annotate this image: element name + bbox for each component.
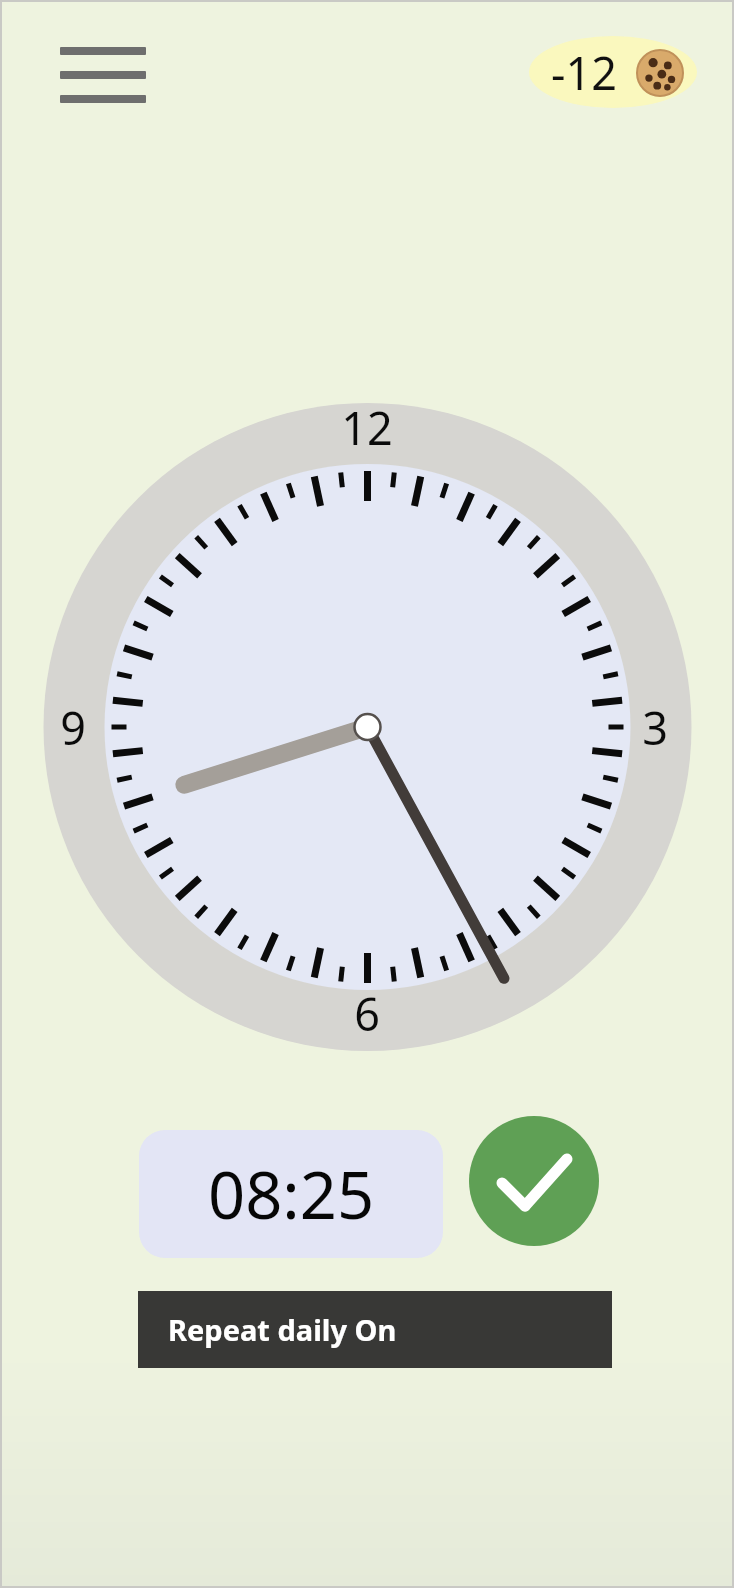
button[interactable]: Repeat daily On	[138, 1291, 612, 1368]
button[interactable]: 08:25	[139, 1130, 443, 1258]
button[interactable]: Confirm alarm	[469, 1116, 599, 1246]
staticText: 08:25	[208, 1150, 375, 1239]
staticText: 9	[60, 697, 86, 758]
staticText: 12	[341, 397, 393, 458]
staticText: Repeat daily On	[168, 1310, 397, 1349]
staticText: 3	[642, 697, 668, 758]
button[interactable]: Menu	[46, 30, 162, 120]
staticText: 6	[354, 983, 380, 1044]
button[interactable]: -12	[529, 36, 697, 108]
staticText: -12	[551, 42, 617, 103]
